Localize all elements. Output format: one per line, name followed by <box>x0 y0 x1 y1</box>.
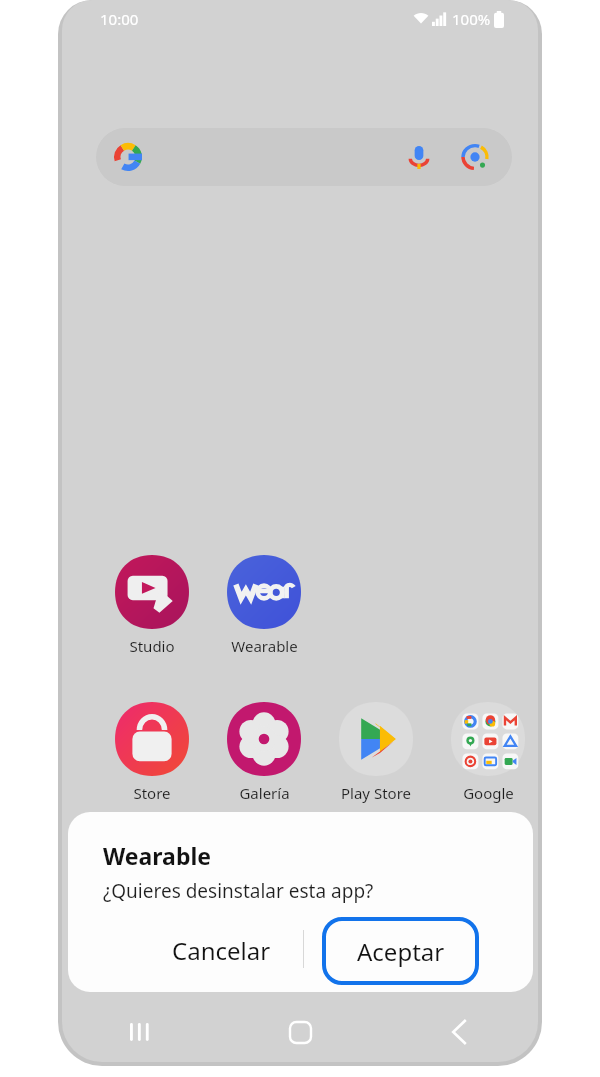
button[interactable]: Aceptar <box>322 917 479 985</box>
button[interactable]: Home <box>278 1010 322 1054</box>
staticText: Cancelar <box>172 934 271 967</box>
staticText: 100% <box>452 9 491 29</box>
staticText: 10:00 <box>100 9 139 29</box>
staticText: Studio <box>129 636 175 656</box>
staticText: Wearable <box>103 840 212 871</box>
staticText: Google <box>463 783 514 803</box>
staticText: Aceptar <box>357 935 445 968</box>
button[interactable]: Studio <box>100 555 204 656</box>
staticText: ¿Quieres desinstalar esta app? <box>103 878 374 904</box>
button[interactable]: Cancelar <box>126 920 316 980</box>
button[interactable]: Google <box>436 702 538 803</box>
button[interactable]: Voice search <box>96 128 512 186</box>
staticText: Galería <box>239 783 290 803</box>
staticText: Store <box>133 783 171 803</box>
button[interactable]: Voice search <box>404 142 434 172</box>
button[interactable]: Back <box>437 1010 481 1054</box>
button[interactable]: Google Lens <box>460 142 490 172</box>
button[interactable]: Wearable <box>212 555 316 656</box>
button[interactable]: Galería <box>212 702 316 803</box>
staticText: Play Store <box>341 783 411 803</box>
button[interactable]: Play Store <box>324 702 428 803</box>
button[interactable]: Store <box>100 702 204 803</box>
button[interactable]: Recents <box>119 1010 163 1054</box>
staticText: Wearable <box>231 636 298 656</box>
